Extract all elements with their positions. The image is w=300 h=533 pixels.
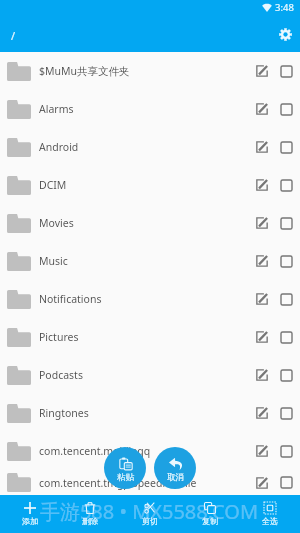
button[interactable]: 删除 [60, 495, 120, 533]
button[interactable]: Pictures [0, 318, 300, 356]
button[interactable]: com.tencent.tmgp.speedmobile [0, 470, 300, 495]
staticText: Pictures [39, 330, 79, 344]
staticText: 全选 [262, 516, 278, 526]
staticText: Ringtones [39, 406, 89, 420]
button[interactable]: $MuMu共享文件夹 [0, 52, 300, 90]
button[interactable]: Rename [250, 287, 274, 311]
button[interactable]: Select [275, 250, 298, 273]
button[interactable]: 剪切 [120, 495, 180, 533]
button[interactable]: 取消 [154, 447, 196, 489]
staticText: Android [39, 140, 79, 154]
button[interactable]: Rename [250, 249, 274, 273]
staticText: com.tencent.tmgp.speedmobile [39, 476, 197, 490]
button[interactable]: Rename [250, 59, 274, 83]
button[interactable]: Rename [250, 173, 274, 197]
button[interactable]: Select [275, 402, 298, 425]
staticText: com.tencent.mobileqq [39, 444, 151, 458]
button[interactable]: Rename [250, 135, 274, 159]
button[interactable]: 复制 [180, 495, 240, 533]
button[interactable]: Select [275, 60, 298, 83]
button[interactable]: Select [275, 326, 298, 349]
button[interactable]: 添加 [0, 495, 60, 533]
staticText: / [11, 28, 16, 43]
staticText: 删除 [82, 516, 98, 526]
button[interactable]: Select [275, 136, 298, 159]
staticText: 添加 [22, 516, 38, 526]
button[interactable]: Select [275, 174, 298, 197]
staticText: DCIM [39, 178, 67, 192]
staticText: Alarms [39, 102, 74, 116]
button[interactable]: Settings [270, 19, 300, 49]
button[interactable]: Android [0, 128, 300, 166]
button[interactable]: Alarms [0, 90, 300, 128]
staticText: Movies [39, 216, 74, 230]
button[interactable]: Rename [250, 439, 274, 463]
button[interactable]: Rename [250, 211, 274, 235]
button[interactable]: Select [275, 212, 298, 235]
button[interactable]: Select [275, 288, 298, 311]
button[interactable]: Movies [0, 204, 300, 242]
button[interactable]: Rename [250, 325, 274, 349]
staticText: $MuMu共享文件夹 [39, 64, 130, 78]
button[interactable]: Podcasts [0, 356, 300, 394]
button[interactable]: Rename [250, 97, 274, 121]
button[interactable]: DCIM [0, 166, 300, 204]
staticText: Podcasts [39, 368, 83, 382]
staticText: 手游588 • MX5588.COM [0, 498, 299, 525]
staticText: Music [39, 254, 68, 268]
button[interactable]: Select [275, 440, 298, 463]
staticText: 3:48 [275, 1, 294, 14]
button[interactable]: Select [275, 364, 298, 387]
button[interactable]: Notifications [0, 280, 300, 318]
button[interactable]: Rename [250, 363, 274, 387]
button[interactable]: Rename [250, 471, 274, 495]
staticText: 复制 [202, 516, 218, 526]
button[interactable]: Rename [250, 401, 274, 425]
staticText: Notifications [39, 292, 102, 306]
staticText: 剪切 [142, 516, 158, 526]
button[interactable]: Select [275, 471, 298, 494]
button[interactable]: 粘贴 [104, 447, 146, 489]
button[interactable]: Ringtones [0, 394, 300, 432]
button[interactable]: Music [0, 242, 300, 280]
button[interactable]: com.tencent.mobileqq [0, 432, 300, 470]
staticText: 粘贴 [117, 472, 134, 483]
button[interactable]: 全选 [240, 495, 300, 533]
button[interactable]: Select [275, 98, 298, 121]
staticText: 取消 [167, 472, 184, 483]
